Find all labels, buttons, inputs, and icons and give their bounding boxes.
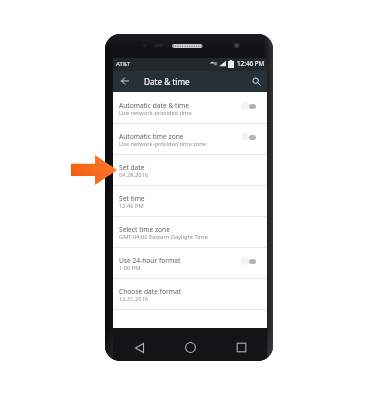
staticText: Choose date format <box>119 287 182 296</box>
button[interactable]: Set date <box>113 155 267 186</box>
staticText: Automatic date & time <box>119 101 190 110</box>
staticText: Use network-provided time zone <box>119 140 206 148</box>
staticText: Set date <box>119 163 145 172</box>
staticText: Set time <box>119 194 145 203</box>
button[interactable]: Toggle, off <box>241 257 256 265</box>
staticText: Date & time <box>144 76 190 87</box>
button[interactable]: Navigate up <box>117 73 133 89</box>
button[interactable]: Home <box>165 328 216 361</box>
button[interactable]: Search <box>248 73 264 89</box>
button[interactable]: Choose date format <box>113 279 267 310</box>
staticText: 1:00 PM <box>119 264 141 272</box>
staticText: Automatic time zone <box>119 132 184 141</box>
button[interactable]: Toggle, off <box>241 133 256 141</box>
button[interactable]: Select time zone <box>113 217 267 248</box>
button[interactable]: Automatic date & time <box>113 93 267 124</box>
staticText: GMT-04:00 Eastern Daylight Time <box>119 233 208 241</box>
staticText: Use 24-hour format <box>119 256 181 265</box>
button[interactable]: Use 24-hour format <box>113 248 267 279</box>
button[interactable]: Back <box>113 328 165 361</box>
staticText: Use network-provided time <box>119 109 192 117</box>
button[interactable]: Set time <box>113 186 267 217</box>
button[interactable]: Automatic time zone <box>113 124 267 155</box>
staticText: Select time zone <box>119 225 170 234</box>
button[interactable]: Recent apps <box>216 328 267 361</box>
staticText: 04.28.2016 <box>119 171 149 179</box>
button[interactable]: Toggle, off <box>241 102 256 110</box>
staticText: 12.31.2016 <box>119 295 149 303</box>
staticText: 12:46 PM <box>119 202 144 210</box>
staticText: AT&T <box>116 60 130 68</box>
staticText: 12:46 PM <box>237 59 265 68</box>
